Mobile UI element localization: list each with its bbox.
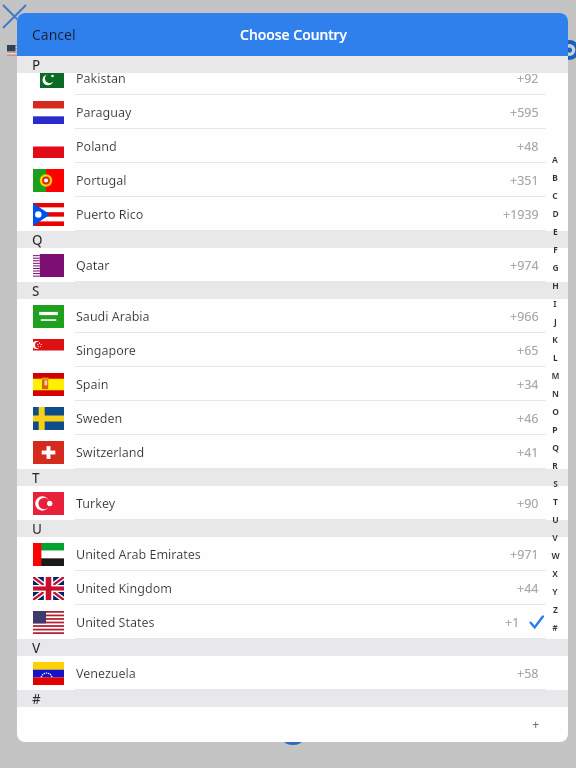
staticText: V <box>552 532 558 544</box>
button[interactable]: United States <box>17 605 568 639</box>
staticText: F <box>553 244 558 256</box>
staticText: Poland <box>76 138 117 155</box>
staticText: H <box>552 280 559 292</box>
button[interactable]: Singapore <box>17 333 568 367</box>
staticText: U <box>552 514 559 526</box>
staticText: +44 <box>517 580 539 597</box>
staticText: Cancel <box>32 25 76 44</box>
staticText: +48 <box>517 138 539 155</box>
button[interactable]: Section index <box>547 151 563 637</box>
button[interactable]: Switzerland <box>17 435 568 469</box>
staticText: A <box>552 154 558 166</box>
staticText: +595 <box>510 104 539 121</box>
staticText: C <box>552 190 558 202</box>
staticText: B <box>552 172 558 184</box>
staticText: M <box>551 370 560 382</box>
staticText: U <box>32 520 42 537</box>
staticText: O <box>552 406 559 418</box>
staticText: X <box>552 568 558 580</box>
staticText: P <box>32 56 41 73</box>
staticText: P <box>552 424 558 436</box>
button[interactable]: Portugal <box>17 163 568 197</box>
staticText: Singapore <box>76 342 136 359</box>
staticText: Turkey <box>76 495 116 512</box>
staticText: +41 <box>517 444 539 461</box>
staticText: Puerto Rico <box>76 206 144 223</box>
staticText: +46 <box>517 410 539 427</box>
staticText: Spain <box>76 376 109 393</box>
staticText: T <box>553 496 558 508</box>
staticText: Y <box>552 586 558 598</box>
staticText: +971 <box>510 546 539 563</box>
staticText: N <box>552 388 559 400</box>
staticText: United Kingdom <box>76 580 172 597</box>
staticText: Portugal <box>76 172 127 189</box>
staticText: Q <box>32 231 43 248</box>
staticText: +966 <box>510 308 539 325</box>
button[interactable]: Qatar <box>17 248 568 282</box>
staticText: Q <box>552 442 559 454</box>
staticText: V <box>32 639 41 656</box>
staticText: Qatar <box>76 257 110 274</box>
staticText: Sweden <box>76 410 123 427</box>
staticText: Z <box>553 604 558 616</box>
button[interactable]: Puerto Rico <box>17 197 568 231</box>
button[interactable]: Sweden <box>17 401 568 435</box>
staticText: + <box>532 715 540 733</box>
staticText: S <box>553 478 558 490</box>
staticText: Switzerland <box>76 444 145 461</box>
staticText: R <box>552 460 558 472</box>
button[interactable]: + <box>17 707 568 741</box>
button[interactable]: Saudi Arabia <box>17 299 568 333</box>
staticText: +65 <box>517 342 539 359</box>
button[interactable]: Paraguay <box>17 95 568 129</box>
staticText: G <box>552 262 559 274</box>
staticText: +1 <box>505 614 520 631</box>
button[interactable]: United Arab Emirates <box>17 537 568 571</box>
staticText: Venezuela <box>76 665 136 682</box>
staticText: W <box>551 550 560 562</box>
staticText: I <box>553 298 557 310</box>
staticText: +92 <box>517 70 539 87</box>
staticText: Saudi Arabia <box>76 308 150 325</box>
button[interactable]: United Kingdom <box>17 571 568 605</box>
staticText: +90 <box>517 495 539 512</box>
staticText: +974 <box>510 257 539 274</box>
staticText: +58 <box>517 665 539 682</box>
button[interactable]: Cancel <box>17 17 88 52</box>
staticText: Pakistan <box>76 70 126 87</box>
staticText: L <box>553 352 558 364</box>
staticText: +1939 <box>503 206 539 223</box>
staticText: # <box>552 622 558 634</box>
button[interactable]: Poland <box>17 129 568 163</box>
staticText: Paraguay <box>76 104 132 121</box>
staticText: United Arab Emirates <box>76 546 201 563</box>
staticText: E <box>553 226 558 238</box>
staticText: Choose Country <box>240 25 347 44</box>
button[interactable]: Spain <box>17 367 568 401</box>
staticText: # <box>32 690 41 707</box>
staticText: United States <box>76 614 155 631</box>
other: Close <box>3 5 26 28</box>
staticText: +34 <box>517 376 539 393</box>
staticText: D <box>552 208 559 220</box>
button[interactable]: Turkey <box>17 486 568 520</box>
staticText: +351 <box>510 172 539 189</box>
staticText: K <box>552 334 558 346</box>
button[interactable]: Venezuela <box>17 656 568 690</box>
staticText: S <box>32 282 40 299</box>
staticText: T <box>32 469 40 486</box>
button[interactable]: Pakistan <box>17 61 568 95</box>
staticText: J <box>554 316 557 328</box>
